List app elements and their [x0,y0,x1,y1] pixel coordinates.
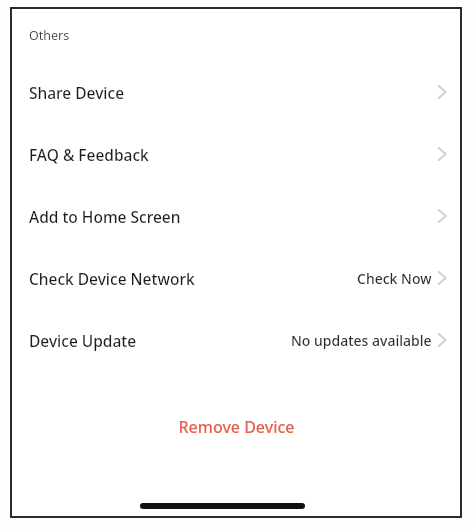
button[interactable]: Device Update [12,309,460,371]
button[interactable]: Add to Home Screen [12,185,460,247]
staticText: Others [29,27,70,44]
staticText: FAQ & Feedback [29,144,149,165]
staticText: Device Update [29,330,137,351]
button[interactable]: Check Device Network [12,247,460,309]
staticText: Add to Home Screen [29,206,181,227]
staticText: Check Device Network [29,268,195,289]
other: Home indicator [140,503,305,509]
staticText: Share Device [29,82,125,103]
button[interactable]: Share Device [12,61,460,123]
button[interactable]: Remove Device [12,409,460,445]
staticText: Remove Device [178,416,295,438]
staticText: Check Now [357,269,432,288]
button[interactable]: FAQ & Feedback [12,123,460,185]
staticText: No updates available [291,331,432,350]
